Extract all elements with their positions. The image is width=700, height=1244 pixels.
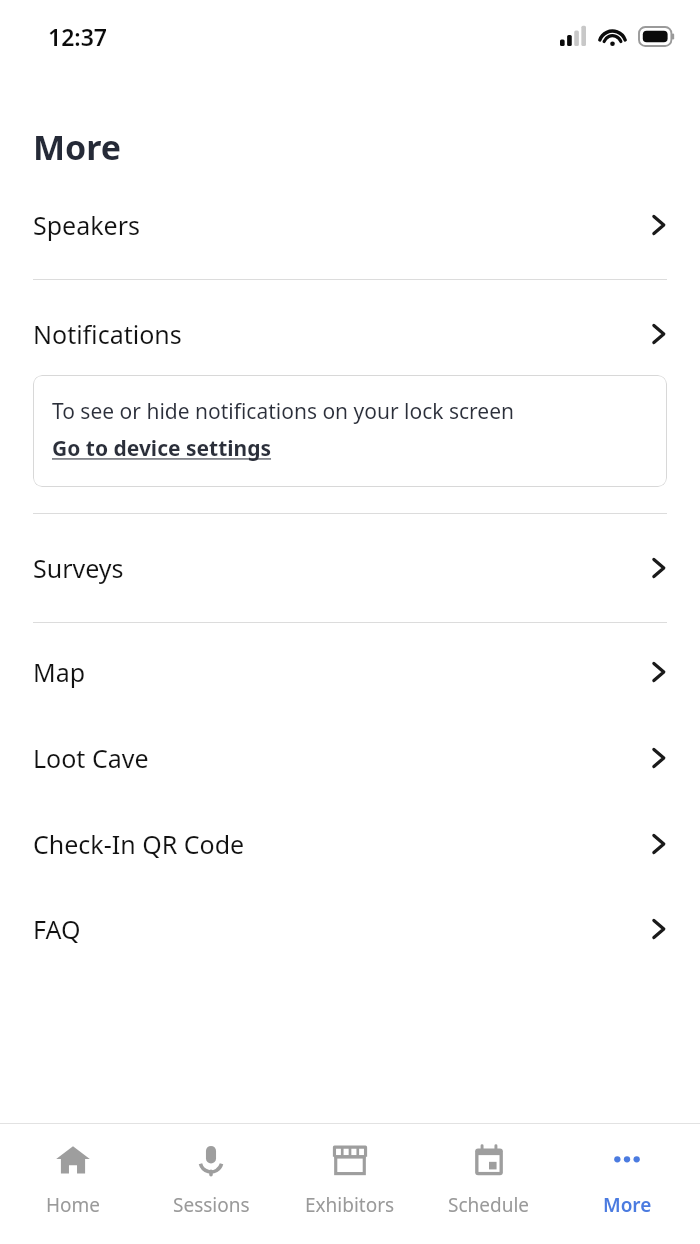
staticText: Go to device settings (52, 434, 272, 463)
staticText: More (33, 124, 122, 170)
staticText: Sessions (173, 1192, 250, 1218)
button[interactable]: More (561, 1124, 693, 1218)
staticText: Schedule (448, 1192, 530, 1218)
button[interactable]: Map (0, 651, 700, 693)
button[interactable]: Loot Cave (0, 737, 700, 779)
staticText: Map (33, 655, 86, 689)
button[interactable]: Sessions (145, 1124, 277, 1218)
button[interactable]: Surveys (0, 547, 700, 589)
button[interactable]: To see or hide notifications on your loc… (33, 375, 667, 487)
staticText: Loot Cave (33, 741, 149, 775)
staticText: To see or hide notifications on your loc… (52, 397, 515, 426)
button[interactable]: Notifications (0, 313, 700, 355)
staticText: Exhibitors (305, 1192, 395, 1218)
staticText: Check-In QR Code (33, 827, 245, 861)
button[interactable]: Speakers (0, 204, 700, 246)
staticText: Speakers (33, 208, 140, 242)
button[interactable]: FAQ (0, 908, 700, 950)
staticText: Home (46, 1192, 101, 1218)
button[interactable]: Check-In QR Code (0, 823, 700, 865)
staticText: 12:37 (48, 21, 107, 52)
staticText: FAQ (33, 912, 81, 946)
staticText: More (603, 1192, 652, 1218)
button[interactable]: Exhibitors (284, 1124, 416, 1218)
staticText: Surveys (33, 551, 124, 585)
button[interactable]: Schedule (423, 1124, 555, 1218)
button[interactable]: Home (7, 1124, 139, 1218)
staticText: Notifications (33, 317, 182, 351)
